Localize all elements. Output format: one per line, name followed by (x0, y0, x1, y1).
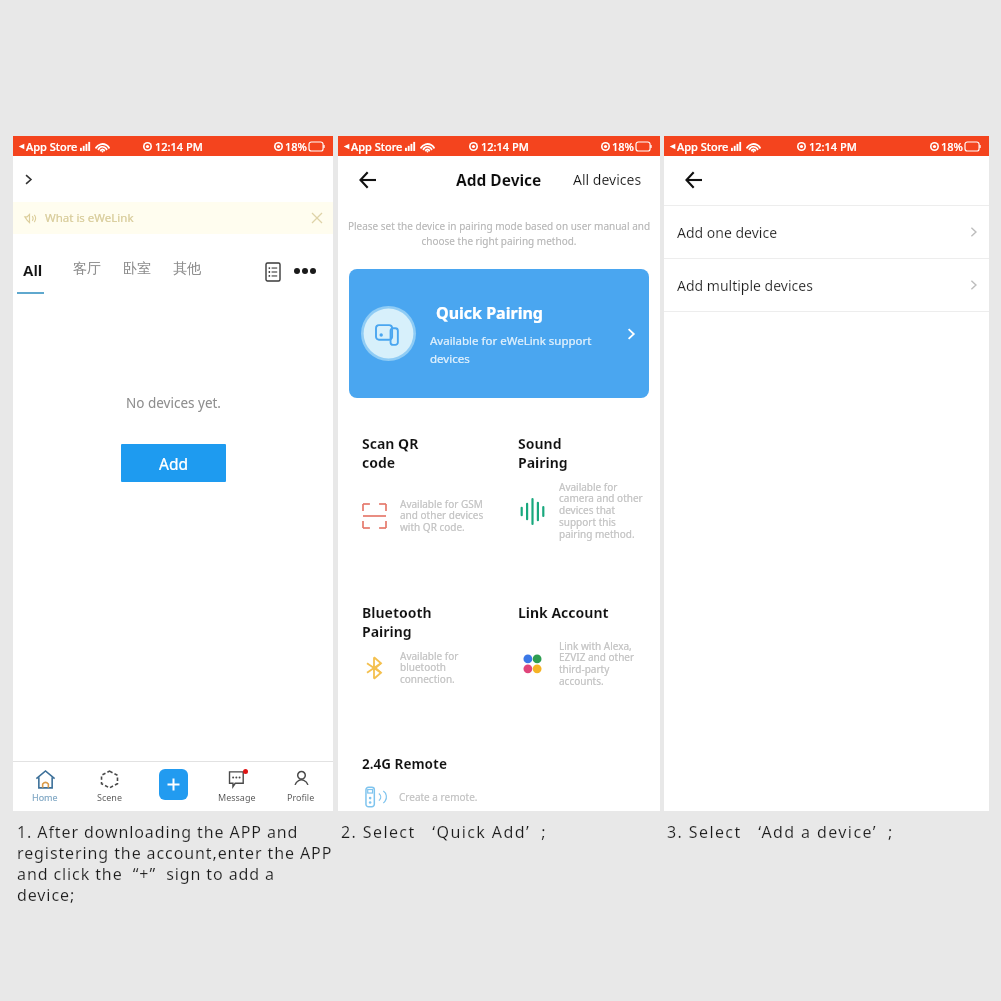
staticText: 12:14 PM (481, 139, 529, 154)
staticText: Sound Pairing (518, 434, 568, 472)
button[interactable]: Scan QR code (362, 434, 518, 534)
staticText: 12:14 PM (155, 139, 203, 154)
staticText: Available for GSM and other devices with… (400, 497, 484, 534)
staticText: Profile (287, 791, 315, 803)
staticText: Add multiple devices (677, 276, 813, 295)
staticText: All (23, 260, 43, 280)
staticText: 18% (612, 139, 634, 154)
staticText: All devices (573, 170, 642, 189)
staticText: Quick Pairing (436, 302, 543, 324)
staticText: Bluetooth Pairing (362, 603, 432, 641)
button[interactable]: All (23, 260, 73, 294)
button[interactable]: Back (360, 172, 376, 188)
staticText: 2.4G Remote (362, 755, 447, 773)
button[interactable]: Profile (269, 762, 333, 811)
staticText: Home (32, 791, 58, 803)
staticText: Available for bluetooth connection. (400, 649, 459, 686)
staticText: Message (218, 791, 256, 803)
button[interactable]: 其他 (173, 260, 223, 278)
button[interactable]: Add one device (664, 206, 989, 258)
staticText: 2. Select ‘Quick Add’ ; (341, 821, 547, 843)
button[interactable]: Close banner (312, 213, 322, 223)
staticText: 1. After downloading the APP and registe… (17, 821, 333, 906)
staticText: 3. Select ‘Add a device’ ; (667, 821, 894, 843)
button[interactable]: Scene (77, 762, 141, 811)
button[interactable]: List view (266, 263, 280, 281)
staticText: Scene (97, 791, 122, 803)
staticText: Link Account (518, 603, 609, 622)
staticText: Add Device (456, 169, 542, 190)
staticText: Create a remote. (399, 790, 478, 804)
staticText: 12:14 PM (809, 139, 857, 154)
button[interactable]: Add multiple devices (664, 259, 989, 311)
button[interactable]: Home (25, 174, 32, 185)
staticText: Available for camera and other devices t… (559, 480, 643, 541)
button[interactable]: Sound Pairing (518, 434, 652, 541)
button[interactable]: Back (686, 172, 702, 188)
staticText: 18% (941, 139, 963, 154)
button[interactable]: Message (205, 762, 269, 811)
staticText: Available for eWeLink support devices (430, 333, 592, 366)
button[interactable]: 卧室 (123, 260, 173, 278)
staticText: App Store (26, 139, 78, 154)
staticText: 18% (285, 139, 307, 154)
staticText: Link with Alexa, EZVIZ and other third-p… (559, 639, 635, 688)
button[interactable]: All devices (573, 170, 642, 189)
button[interactable]: What is eWeLink (13, 202, 333, 234)
staticText: What is eWeLink (45, 210, 134, 226)
staticText: App Store (351, 139, 403, 154)
staticText: Add one device (677, 223, 778, 242)
button[interactable]: More options (294, 268, 316, 274)
button[interactable]: Add (121, 444, 226, 482)
button[interactable]: Quick Pairing (349, 269, 649, 398)
button[interactable]: Home (13, 762, 77, 811)
staticText: Add (159, 453, 188, 474)
staticText: No devices yet. (126, 394, 221, 412)
button[interactable]: Bluetooth Pairing (362, 603, 518, 686)
staticText: Please set the device in pairing mode ba… (340, 219, 658, 248)
button[interactable]: Add device (159, 769, 188, 800)
staticText: App Store (677, 139, 729, 154)
staticText: Scan QR code (362, 434, 419, 472)
button[interactable]: Link Account (518, 603, 652, 688)
button[interactable]: 客厅 (73, 260, 123, 278)
